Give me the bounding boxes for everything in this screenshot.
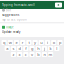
staticText: i xyxy=(47,40,48,45)
button[interactable]: u xyxy=(39,40,44,45)
staticText: Usage xyxy=(6,25,14,29)
staticText: Bot xyxy=(6,8,11,12)
staticText: p xyxy=(59,40,61,45)
staticText: k xyxy=(50,46,52,51)
staticText: y xyxy=(34,40,36,45)
staticText: c xyxy=(25,52,27,57)
button[interactable]: Play xyxy=(55,2,62,7)
button[interactable]: n xyxy=(42,52,47,57)
button[interactable]: m xyxy=(48,52,53,57)
staticText: b xyxy=(37,52,39,57)
button[interactable]: y xyxy=(32,40,38,45)
staticText: o xyxy=(53,40,55,45)
staticText: j xyxy=(44,46,45,51)
staticText: t xyxy=(28,40,29,45)
button[interactable]: k xyxy=(48,46,53,51)
button[interactable]: i xyxy=(45,40,50,45)
staticText: g xyxy=(31,46,33,51)
button[interactable]: Bot xyxy=(0,8,64,21)
button[interactable]: r xyxy=(20,40,25,45)
button[interactable]: o xyxy=(51,40,56,45)
staticText: Suggestions xyxy=(2,13,19,17)
staticText: d xyxy=(19,46,21,51)
button[interactable]: b xyxy=(36,52,41,57)
button[interactable]: g xyxy=(29,46,35,51)
staticText: e xyxy=(15,40,17,45)
button[interactable]: Usage xyxy=(0,25,64,34)
button[interactable]: e xyxy=(14,40,19,45)
staticText: Tap to see option xyxy=(2,18,27,21)
staticText: x xyxy=(19,52,21,57)
staticText: u xyxy=(40,40,42,45)
staticText: v xyxy=(31,52,33,57)
staticText: a xyxy=(6,46,8,51)
button[interactable]: s xyxy=(11,46,16,51)
button[interactable]: h xyxy=(36,46,41,51)
staticText: n xyxy=(43,52,45,57)
staticText: s xyxy=(12,46,14,51)
staticText: Tipping from auto-scroll xyxy=(2,3,35,7)
staticText: Update ready xyxy=(2,30,20,34)
button[interactable]: j xyxy=(42,46,47,51)
button[interactable]: w xyxy=(8,40,13,45)
button[interactable]: d xyxy=(17,46,22,51)
staticText: f xyxy=(25,46,26,51)
button[interactable]: p xyxy=(57,40,62,45)
button[interactable]: x xyxy=(17,52,22,57)
button[interactable]: a xyxy=(5,46,10,51)
button[interactable]: t xyxy=(26,40,31,45)
button[interactable]: v xyxy=(29,52,35,57)
staticText: m xyxy=(49,52,53,57)
staticText: h xyxy=(37,46,39,51)
button[interactable]: q xyxy=(1,40,7,45)
staticText: w xyxy=(9,40,12,45)
staticText: q xyxy=(3,40,5,45)
staticText: z xyxy=(12,52,14,57)
staticText: r xyxy=(22,40,24,45)
button[interactable]: z xyxy=(11,52,16,57)
staticText: l xyxy=(56,46,57,51)
button[interactable]: l xyxy=(54,46,59,51)
button[interactable]: f xyxy=(23,46,28,51)
button[interactable]: c xyxy=(23,52,28,57)
